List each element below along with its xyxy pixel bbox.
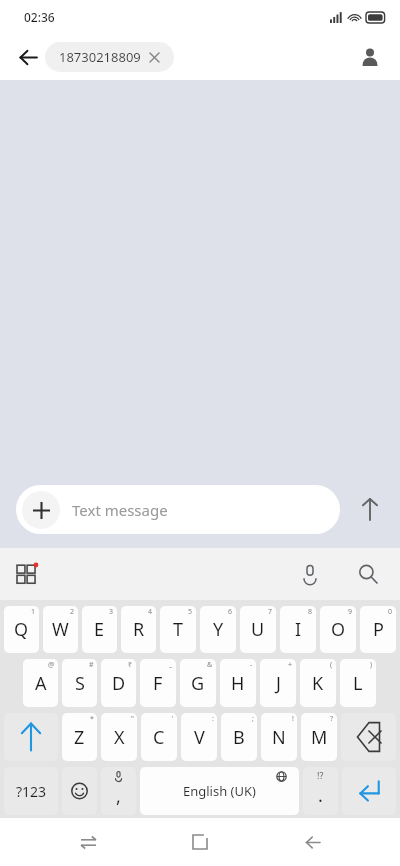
- button[interactable]: Recents: [64, 818, 112, 866]
- button[interactable]: !: [261, 713, 297, 761]
- staticText: N: [272, 725, 286, 750]
- staticText: 7: [268, 607, 273, 617]
- staticText: E: [94, 617, 105, 642]
- staticText: T: [173, 617, 184, 642]
- button[interactable]: 18730218809: [45, 42, 174, 72]
- staticText: 1: [31, 607, 36, 617]
- button[interactable]: 3: [82, 606, 117, 653]
- staticText: Y: [213, 617, 224, 642]
- staticText: P: [373, 617, 384, 642]
- button[interactable]: &: [180, 659, 216, 707]
- staticText: H: [231, 671, 245, 696]
- button[interactable]: _: [140, 659, 176, 707]
- staticText: ): [370, 660, 373, 670]
- staticText: ?123: [16, 782, 47, 801]
- button[interactable]: 0: [360, 606, 396, 653]
- staticText: ₹: [128, 660, 133, 670]
- staticText: 02:36: [24, 9, 55, 25]
- button[interactable]: Back: [288, 818, 336, 866]
- button[interactable]: :: [181, 713, 217, 761]
- staticText: .: [318, 783, 323, 808]
- button[interactable]: 6: [200, 606, 236, 653]
- button[interactable]: Back: [8, 37, 48, 77]
- staticText: U: [251, 617, 265, 642]
- button[interactable]: Backspace: [341, 713, 396, 761]
- staticText: !?: [317, 769, 324, 781]
- staticText: ?: [330, 714, 334, 724]
- staticText: Z: [74, 725, 85, 750]
- button[interactable]: *: [62, 713, 97, 761]
- button[interactable]: +: [260, 659, 296, 707]
- staticText: +: [288, 660, 293, 670]
- button[interactable]: ?: [301, 713, 337, 761]
- button[interactable]: Contact: [350, 37, 390, 77]
- button[interactable]: 8: [280, 606, 316, 653]
- button[interactable]: ): [340, 659, 376, 707]
- staticText: @: [48, 660, 55, 670]
- button[interactable]: ?123: [4, 767, 58, 815]
- staticText: 2: [70, 607, 75, 617]
- button[interactable]: Enter: [342, 767, 396, 815]
- button[interactable]: Add attachment: [16, 485, 340, 534]
- button[interactable]: Voice input: [292, 556, 328, 592]
- staticText: G: [191, 671, 205, 696]
- staticText: ': [172, 714, 174, 724]
- button[interactable]: English (UK): [140, 767, 299, 815]
- staticText: I: [295, 617, 302, 642]
- button[interactable]: Search: [350, 556, 386, 592]
- button[interactable]: Apps: [10, 556, 46, 592]
- staticText: M: [311, 725, 328, 750]
- staticText: &: [207, 660, 213, 670]
- staticText: 6: [228, 607, 233, 617]
- button[interactable]: (: [300, 659, 336, 707]
- staticText: C: [153, 725, 165, 750]
- staticText: Text message: [72, 500, 168, 520]
- staticText: A: [35, 671, 47, 696]
- staticText: O: [331, 617, 346, 642]
- button[interactable]: 1: [4, 606, 39, 653]
- staticText: S: [75, 671, 85, 696]
- button[interactable]: Shift: [4, 713, 58, 761]
- staticText: _: [169, 660, 173, 670]
- staticText: !: [292, 714, 294, 724]
- button[interactable]: !?: [303, 767, 338, 815]
- button[interactable]: ;: [221, 713, 257, 761]
- button[interactable]: 5: [160, 606, 196, 653]
- staticText: ": [131, 714, 134, 724]
- button[interactable]: 4: [121, 606, 156, 653]
- button[interactable]: 2: [43, 606, 78, 653]
- button[interactable]: ': [141, 713, 177, 761]
- staticText: ,: [116, 784, 121, 809]
- staticText: D: [112, 671, 126, 696]
- staticText: *: [90, 714, 94, 724]
- staticText: -: [250, 660, 253, 670]
- staticText: K: [312, 671, 324, 696]
- button[interactable]: Emoji: [62, 767, 97, 815]
- button[interactable]: @: [23, 659, 58, 707]
- button[interactable]: 9: [320, 606, 356, 653]
- staticText: R: [133, 617, 145, 642]
- staticText: 0: [388, 607, 393, 617]
- button[interactable]: ": [101, 713, 137, 761]
- staticText: Q: [14, 617, 29, 642]
- staticText: 9: [348, 607, 353, 617]
- button[interactable]: -: [220, 659, 256, 707]
- button[interactable]: #: [62, 659, 97, 707]
- staticText: 3: [109, 607, 114, 617]
- staticText: ;: [252, 714, 254, 724]
- staticText: X: [114, 725, 125, 750]
- staticText: :: [212, 714, 214, 724]
- button[interactable]: Home: [176, 818, 224, 866]
- staticText: L: [353, 671, 363, 696]
- button[interactable]: ₹: [101, 659, 136, 707]
- button[interactable]: Send: [340, 470, 400, 548]
- staticText: B: [233, 725, 245, 750]
- button[interactable]: Add attachment: [22, 491, 60, 529]
- button[interactable]: 7: [240, 606, 276, 653]
- staticText: J: [276, 671, 281, 696]
- button[interactable]: ,: [101, 767, 136, 815]
- staticText: #: [89, 660, 94, 670]
- staticText: 18730218809: [59, 48, 141, 66]
- staticText: (: [330, 660, 333, 670]
- staticText: F: [153, 671, 163, 696]
